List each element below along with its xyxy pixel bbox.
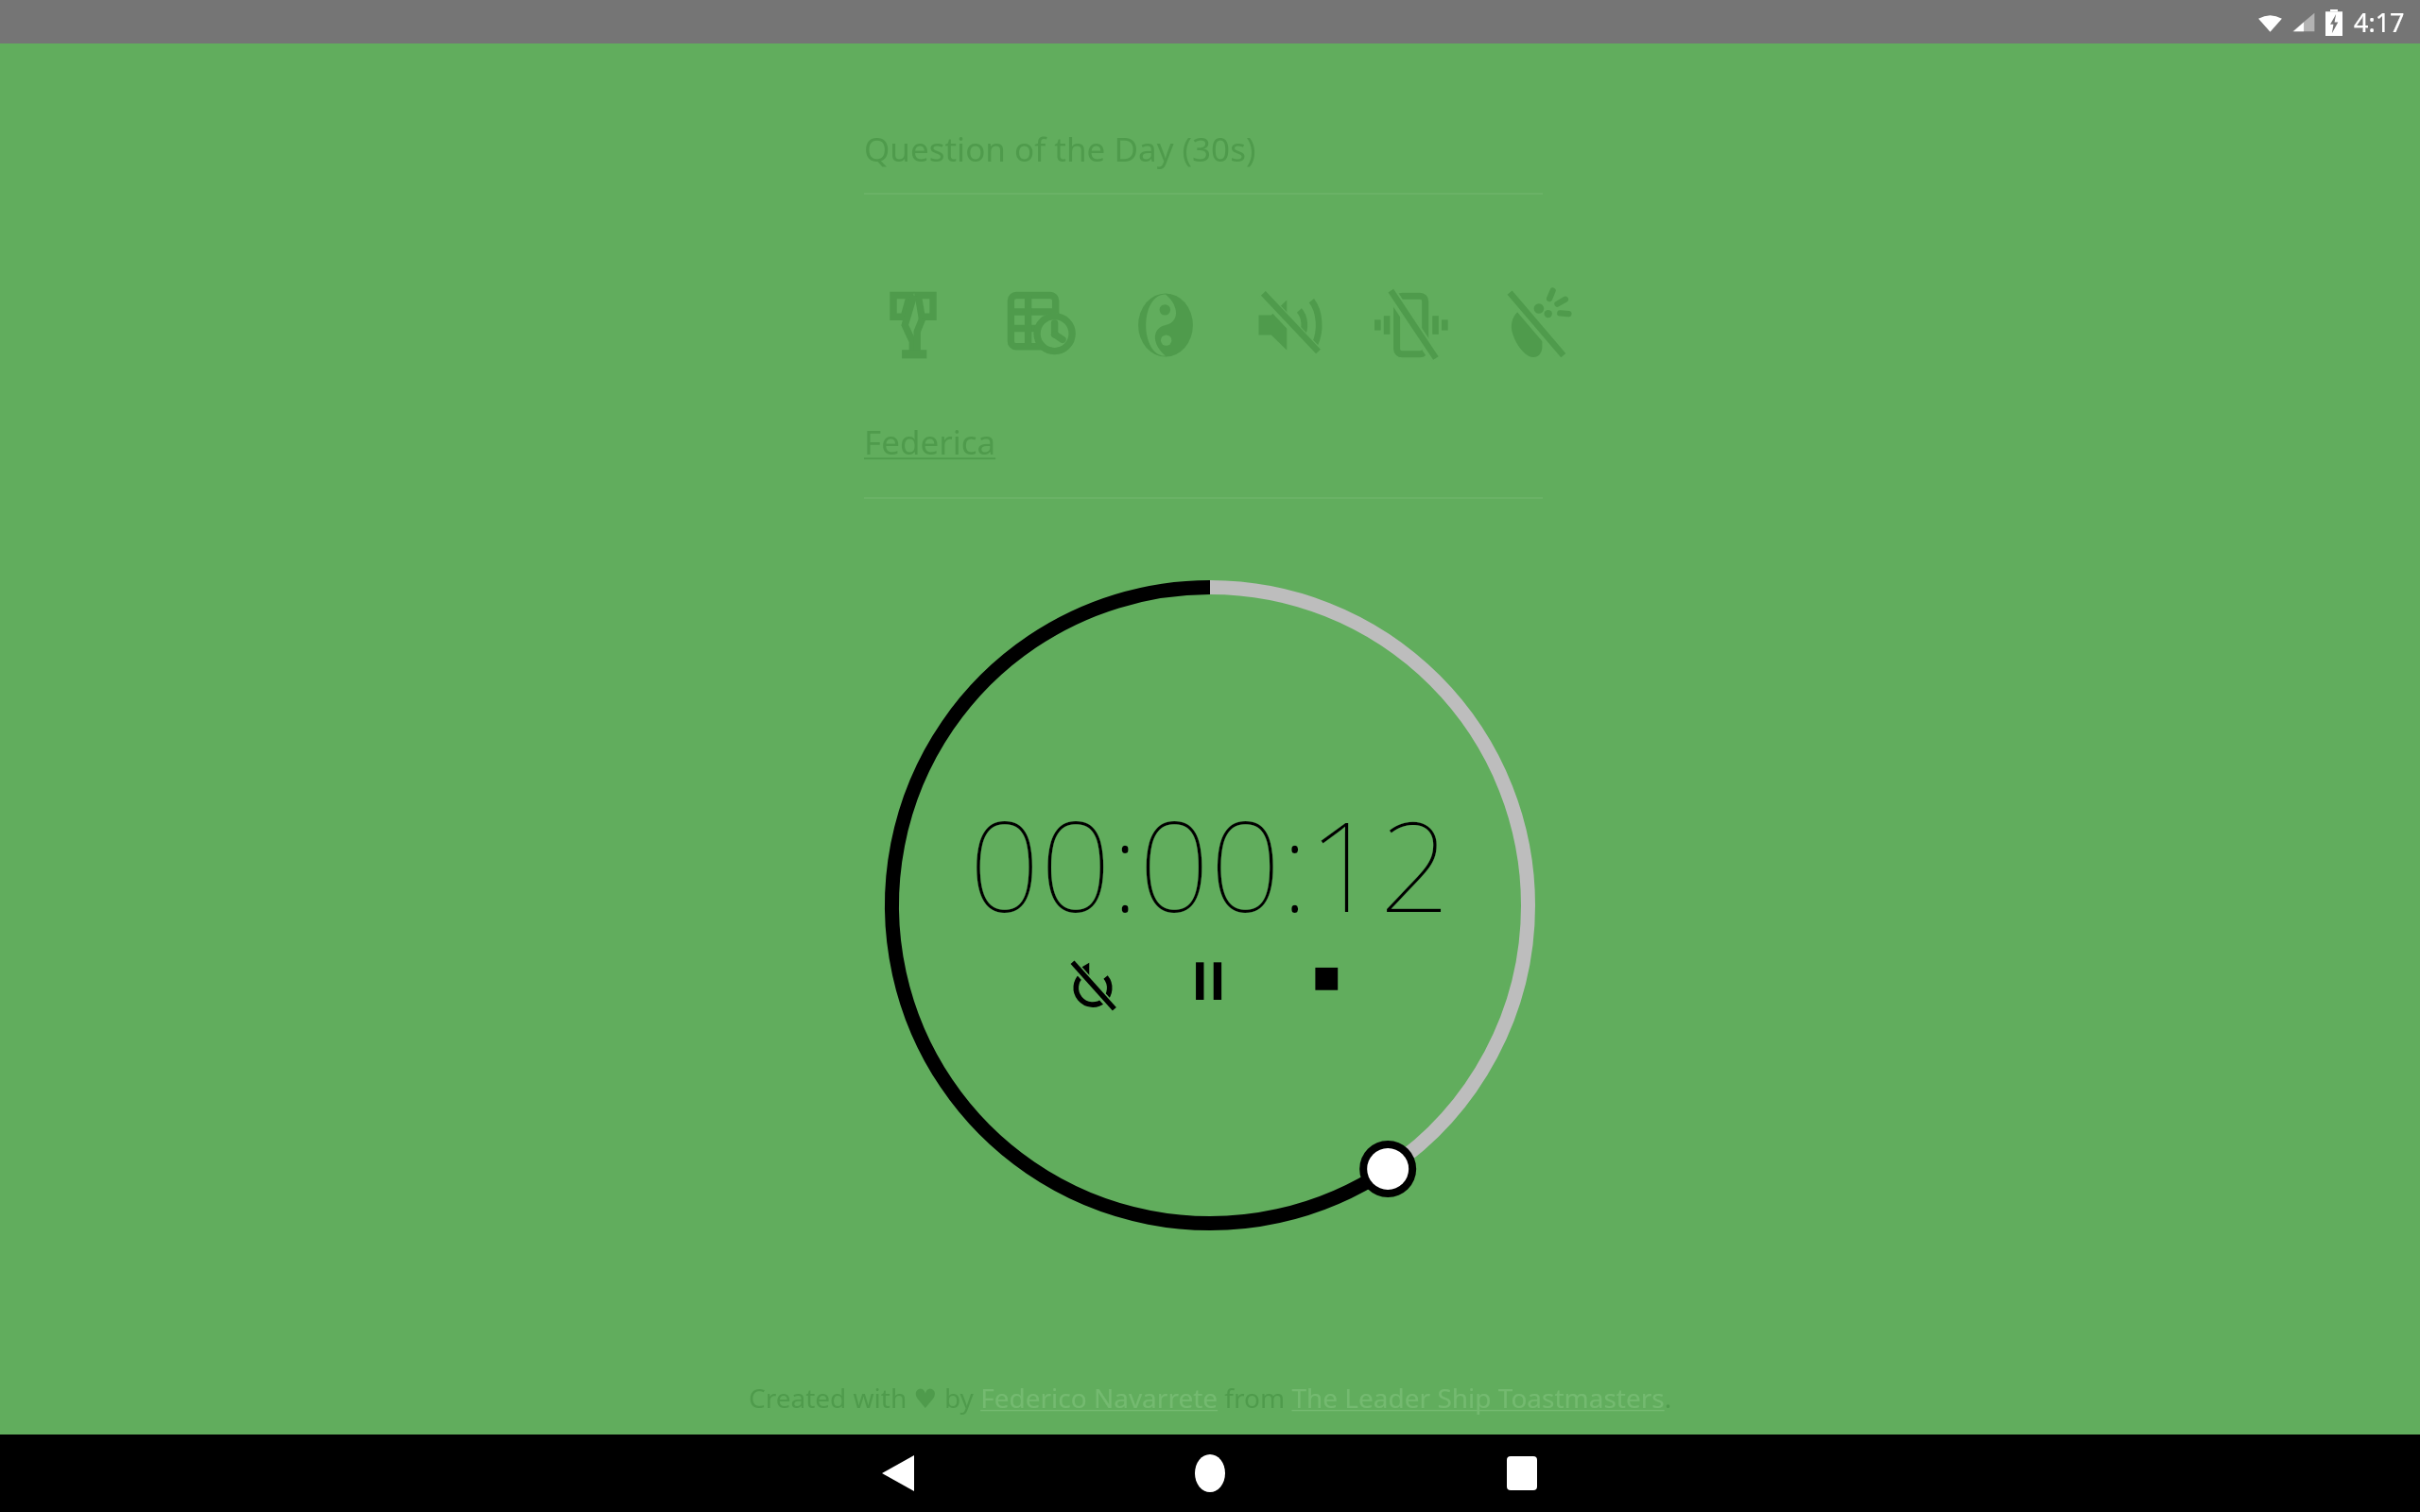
staticText: Federica (864, 420, 996, 465)
staticText: Created with ♥ by Federico Navarrete fro… (749, 1380, 1672, 1416)
button[interactable]: Repeat off (1059, 953, 1127, 1021)
button[interactable]: Mute (1227, 278, 1350, 372)
staticText: 00:00:12 (969, 779, 1451, 949)
button[interactable]: Back (742, 1435, 1054, 1512)
button[interactable]: Created with ♥ by Federico Navarrete fro… (749, 1380, 1672, 1416)
button[interactable]: No touch (1473, 278, 1596, 372)
button[interactable]: Stop (1293, 953, 1361, 1021)
button[interactable]: Broken glass (858, 278, 981, 372)
button[interactable]: Balance (1104, 278, 1227, 372)
staticText: Question of the Day (30s) (864, 127, 1256, 172)
button[interactable]: Vibration off (1350, 278, 1473, 372)
button[interactable]: Home (1054, 1435, 1366, 1512)
button[interactable]: Question of the Day (30s) (864, 127, 1543, 195)
button[interactable]: Recents (1366, 1435, 1678, 1512)
staticText: 4:17 (2354, 5, 2405, 40)
button[interactable]: Timetable (981, 278, 1104, 372)
button[interactable]: Pause (1176, 953, 1244, 1021)
